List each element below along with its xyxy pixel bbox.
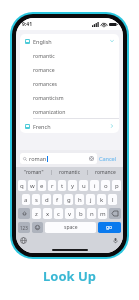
staticText: q	[20, 182, 24, 190]
staticText: s	[35, 196, 38, 204]
button[interactable]: Cancel	[97, 155, 119, 162]
staticText: go	[106, 224, 113, 231]
staticText: v	[68, 210, 72, 218]
button[interactable]: x	[43, 208, 52, 219]
staticText: p	[115, 182, 119, 190]
staticText: g	[67, 196, 71, 204]
button[interactable]: w	[28, 180, 36, 191]
button[interactable]: l	[108, 194, 117, 205]
button[interactable]: k	[97, 194, 106, 205]
button[interactable]: v	[65, 208, 74, 219]
button[interactable]: romance	[88, 167, 123, 178]
button[interactable]: Dictate	[112, 237, 119, 244]
button[interactable]: f	[53, 194, 62, 205]
staticText: n	[90, 210, 94, 218]
staticText: l	[112, 196, 114, 204]
button[interactable]: m	[98, 208, 107, 219]
staticText: t	[61, 182, 64, 190]
staticText: y	[71, 182, 75, 190]
button[interactable]: u	[79, 180, 88, 191]
staticText: x	[46, 210, 50, 218]
button[interactable]: Delete	[109, 208, 121, 219]
staticText: romantic	[59, 169, 81, 176]
button[interactable]: Switch keyboard	[20, 237, 27, 244]
staticText: "roman"	[24, 169, 44, 176]
staticText: a	[24, 196, 28, 204]
staticText: romanticism	[33, 94, 64, 101]
staticText: z	[35, 210, 38, 218]
button[interactable]: j	[86, 194, 95, 205]
button[interactable]: go	[98, 222, 121, 233]
staticText: romanization	[33, 108, 66, 115]
button[interactable]: roman	[20, 153, 97, 164]
staticText: r	[51, 182, 54, 190]
staticText: w	[30, 182, 35, 190]
button[interactable]: g	[64, 194, 73, 205]
staticText: f	[56, 196, 59, 204]
staticText: j	[90, 196, 92, 204]
button[interactable]: "roman"	[16, 167, 51, 178]
staticText: Cancel	[99, 155, 117, 162]
button[interactable]: romanization	[20, 104, 119, 118]
staticText: m	[100, 210, 106, 218]
button[interactable]: English	[20, 34, 119, 48]
button[interactable]: p	[112, 180, 121, 191]
staticText: Look Up	[0, 267, 139, 285]
staticText: b	[79, 210, 83, 218]
button[interactable]: z	[32, 208, 41, 219]
button[interactable]: r	[48, 180, 56, 191]
staticText: k	[100, 196, 104, 204]
staticText: u	[82, 182, 86, 190]
button[interactable]: t	[58, 180, 66, 191]
staticText: roman	[29, 155, 47, 162]
button[interactable]: Emoji	[32, 222, 43, 233]
button[interactable]: a	[22, 194, 30, 205]
button[interactable]: s	[32, 194, 40, 205]
button[interactable]: n	[87, 208, 96, 219]
staticText: d	[45, 196, 49, 204]
button[interactable]: Shift	[18, 208, 30, 219]
staticText: romantic	[33, 52, 55, 59]
staticText: English	[33, 38, 52, 45]
staticText: c	[57, 210, 60, 218]
button[interactable]: d	[42, 194, 51, 205]
button[interactable]: h	[75, 194, 84, 205]
button[interactable]: Clear text	[89, 156, 94, 161]
button[interactable]: romances	[20, 76, 119, 90]
staticText: French	[33, 123, 51, 130]
staticText: h	[78, 196, 82, 204]
button[interactable]: French	[20, 119, 119, 133]
staticText: 123	[20, 225, 28, 231]
button[interactable]: o	[101, 180, 110, 191]
staticText: romance	[33, 66, 55, 73]
button[interactable]: romance	[20, 62, 119, 76]
button[interactable]: q	[18, 180, 26, 191]
staticText: i	[94, 182, 96, 190]
button[interactable]: romantic	[20, 48, 119, 62]
staticText: 9:41	[22, 21, 32, 28]
button[interactable]: space	[45, 222, 96, 233]
button[interactable]: b	[76, 208, 85, 219]
button[interactable]: 123	[18, 222, 30, 233]
staticText: o	[104, 182, 108, 190]
staticText: romances	[33, 80, 58, 87]
button[interactable]: c	[54, 208, 63, 219]
staticText: space	[64, 224, 78, 231]
button[interactable]: i	[90, 180, 99, 191]
staticText: e	[40, 182, 44, 190]
button[interactable]: y	[68, 180, 77, 191]
button[interactable]: romantic	[52, 167, 87, 178]
button[interactable]: romanticism	[20, 90, 119, 104]
button[interactable]: e	[38, 180, 46, 191]
staticText: romance	[95, 169, 116, 176]
